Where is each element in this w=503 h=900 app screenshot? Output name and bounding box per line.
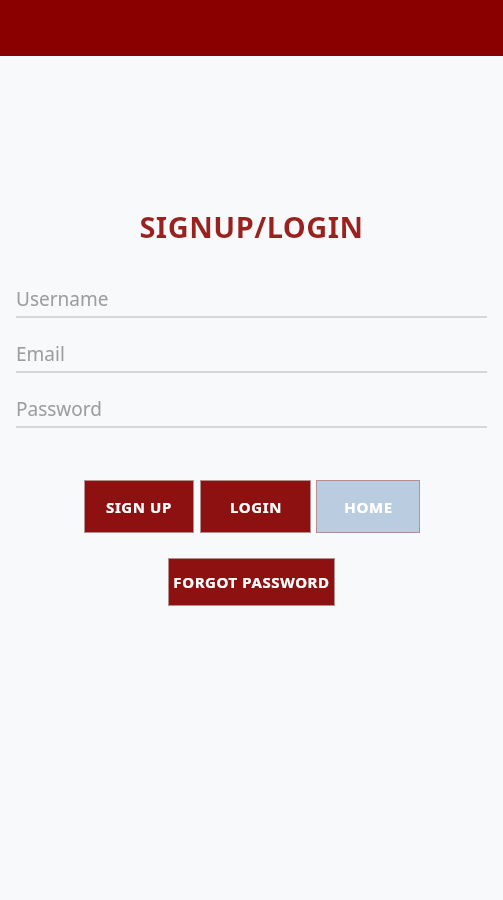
button[interactable]: HOME [317, 481, 419, 532]
staticText: Email [16, 341, 65, 367]
button[interactable]: FORGOT PASSWORD [169, 559, 334, 605]
staticText: FORGOT PASSWORD [173, 572, 330, 592]
staticText: Password [16, 396, 102, 422]
button[interactable]: Username [16, 282, 487, 318]
staticText: Username [16, 286, 109, 312]
staticText: SIGNUP/LOGIN [139, 207, 364, 246]
staticText: SIGN UP [106, 497, 172, 517]
button[interactable]: SIGN UP [85, 481, 193, 532]
button[interactable]: LOGIN [201, 481, 310, 532]
button[interactable]: Email [16, 337, 487, 373]
button[interactable]: Password [16, 392, 487, 428]
staticText: LOGIN [230, 497, 282, 517]
staticText: HOME [344, 497, 393, 517]
